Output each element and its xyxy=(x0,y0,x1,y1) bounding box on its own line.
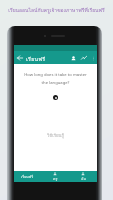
button[interactable]: More options xyxy=(89,54,97,62)
staticText: เรียนฟรี xyxy=(21,174,34,180)
button[interactable]: เรียนฟรี xyxy=(14,171,41,182)
button[interactable]: ครู xyxy=(41,171,69,182)
staticText: How long does it take to master the lang… xyxy=(14,72,97,85)
staticText: ฉัน xyxy=(81,176,86,182)
staticText: เรียนออนไลน์กับครูเจ้าของภาษาฟรีที่เรียน… xyxy=(0,6,113,14)
staticText: เรียนฟรี xyxy=(26,55,46,63)
staticText: ครู xyxy=(53,176,58,182)
button[interactable]: ฉัน xyxy=(69,171,97,182)
staticText: วิธีเรียนรู้ xyxy=(14,132,97,139)
button[interactable]: Progress xyxy=(78,52,89,63)
button[interactable]: Profile xyxy=(68,53,78,63)
button[interactable]: Back xyxy=(14,52,25,63)
